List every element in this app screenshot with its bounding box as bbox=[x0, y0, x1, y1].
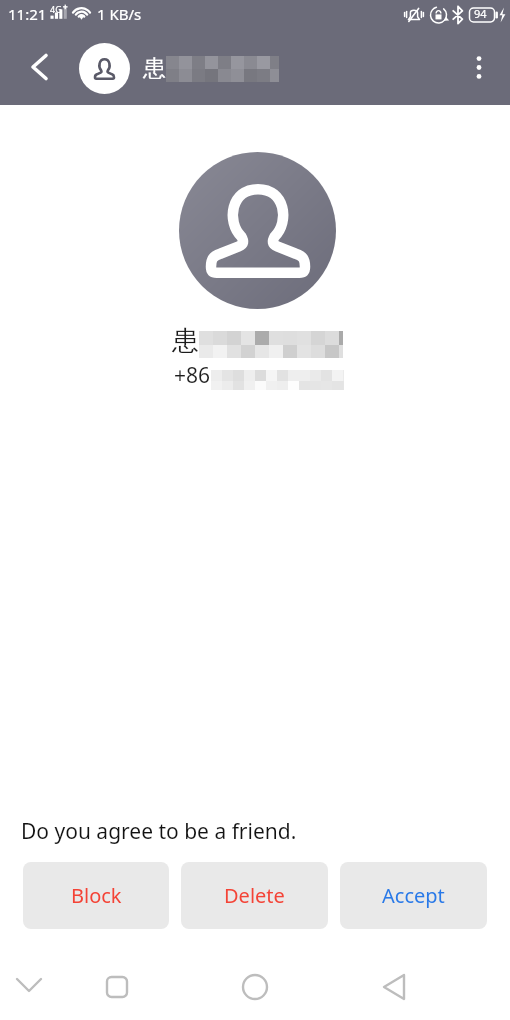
staticText: Block bbox=[71, 882, 122, 909]
staticText: Do you agree to be a friend. bbox=[21, 817, 297, 846]
button[interactable]: Back bbox=[11, 30, 67, 103]
staticText: 1 KB/s bbox=[97, 4, 142, 24]
button[interactable]: Block bbox=[23, 862, 169, 929]
button[interactable]: Recents bbox=[90, 956, 144, 1018]
staticText: Delete bbox=[224, 882, 285, 909]
staticText: 94 bbox=[474, 6, 487, 21]
staticText: +86 bbox=[174, 361, 211, 390]
button[interactable]: More options bbox=[454, 31, 504, 104]
button[interactable]: Hide keyboard bbox=[2, 956, 56, 1018]
button[interactable]: Home bbox=[228, 956, 282, 1018]
staticText: 4G bbox=[50, 3, 62, 15]
staticText: 患 bbox=[172, 324, 199, 358]
staticText: 患 bbox=[143, 54, 166, 83]
staticText: Accept bbox=[382, 882, 445, 909]
button[interactable]: Back bbox=[367, 956, 421, 1018]
button[interactable]: Accept bbox=[340, 862, 487, 929]
staticText: 11:21 bbox=[8, 4, 47, 24]
button[interactable]: Delete bbox=[181, 862, 328, 929]
